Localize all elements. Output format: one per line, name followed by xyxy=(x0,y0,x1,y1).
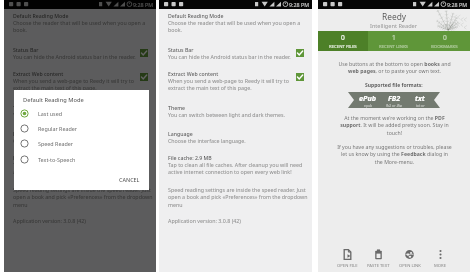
staticText: Intelligent Reader xyxy=(370,22,418,30)
staticText: OPEN FILE xyxy=(337,263,358,269)
staticText: Reedy xyxy=(382,11,407,22)
button[interactable]: 1 xyxy=(368,31,419,51)
staticText: You can switch between light and dark th… xyxy=(13,111,130,118)
staticText: RECENT FILES xyxy=(329,43,357,49)
button[interactable]: File cache: 2.9 MB xyxy=(159,154,312,176)
staticText: At the moment we're working on the PDF s… xyxy=(340,114,449,137)
button[interactable]: PASTE TEXT xyxy=(363,246,394,272)
staticText: txt xyxy=(415,93,425,103)
staticText: 9:28 PM xyxy=(447,1,468,8)
button[interactable]: Toggle setting xyxy=(296,49,304,57)
button[interactable]: CANCEL xyxy=(119,176,149,183)
button[interactable]: Default Reading Mode xyxy=(4,12,156,34)
button[interactable]: OPEN FILE xyxy=(332,246,363,272)
staticText: txt or xyxy=(416,103,425,108)
staticText: 0 xyxy=(341,33,345,42)
button[interactable]: Theme xyxy=(159,104,312,118)
button[interactable]: Regular Reader xyxy=(14,121,149,135)
staticText: Default Reading Mode xyxy=(23,96,84,104)
staticText: Status Bar xyxy=(168,46,194,53)
button[interactable]: Theme xyxy=(4,104,156,118)
staticText: RECENT LINKS xyxy=(379,43,408,49)
staticText: epub xyxy=(364,103,373,108)
staticText: Language xyxy=(13,130,38,137)
staticText: You can switch between light and dark th… xyxy=(168,111,285,118)
button[interactable]: File cache: 2.9 MB xyxy=(4,154,156,176)
staticText: Choose the interface language. xyxy=(13,137,91,144)
staticText: Choose the reader that will be used when… xyxy=(168,19,307,34)
staticText: 9:28 PM xyxy=(289,1,310,8)
button[interactable]: Status Bar xyxy=(159,46,312,60)
staticText: Choose the reader that will be used when… xyxy=(13,19,151,34)
button[interactable]: 0 xyxy=(318,31,368,51)
staticText: Regular Reader xyxy=(38,125,78,132)
staticText: Application version: 3.0.8 (42) xyxy=(13,217,86,224)
staticText: Language xyxy=(168,130,193,137)
button[interactable]: Text-to-Speech xyxy=(14,152,149,166)
staticText: Extract Web content xyxy=(168,70,219,77)
button[interactable]: MORE xyxy=(425,246,456,272)
staticText: Theme xyxy=(13,104,31,111)
staticText: Application version: 3.0.8 (42) xyxy=(168,217,241,224)
button[interactable]: Language xyxy=(4,130,156,144)
staticText: Theme xyxy=(168,104,186,111)
button[interactable]: Toggle setting xyxy=(140,73,148,81)
staticText: MORE xyxy=(434,263,447,269)
staticText: Tap to clean all file caches. After clea… xyxy=(168,161,307,176)
staticText: FB2 xyxy=(388,93,401,103)
staticText: File cache: 2.9 MB xyxy=(13,154,57,161)
staticText: PASTE TEXT xyxy=(367,263,390,269)
staticText: 0 xyxy=(443,33,447,42)
staticText: OPEN LINK xyxy=(399,263,421,269)
staticText: 9:28 PM xyxy=(133,1,154,8)
staticText: Tap to clean all file caches. After clea… xyxy=(13,161,151,176)
button[interactable]: Status Bar xyxy=(4,46,156,60)
staticText: 1 xyxy=(392,33,396,42)
staticText: When you send a web-page to Reedy it wil… xyxy=(168,77,293,92)
staticText: If you have any suggestions or troubles,… xyxy=(337,143,452,166)
staticText: When you send a web-page to Reedy it wil… xyxy=(13,77,137,92)
button[interactable]: Speed Reader xyxy=(14,136,149,150)
staticText: Status Bar xyxy=(13,46,39,53)
button[interactable]: Last used xyxy=(14,106,149,120)
button[interactable]: 0 xyxy=(419,31,470,51)
staticText: Text-to-Speech xyxy=(38,156,76,163)
button[interactable]: Default Reading Mode xyxy=(159,12,312,34)
staticText: You can hide the Android status bar in t… xyxy=(168,53,291,60)
staticText: Speed reading settings are inside the sp… xyxy=(168,186,308,209)
staticText: Default Reading Mode xyxy=(168,12,224,19)
staticText: Extract Web content xyxy=(13,70,64,77)
button[interactable]: OPEN LINK xyxy=(394,246,425,272)
staticText: Speed Reader xyxy=(38,140,74,147)
staticText: Speed reading settings are inside the sp… xyxy=(13,186,153,209)
staticText: Default Reading Mode xyxy=(13,12,69,19)
staticText: ePub xyxy=(359,93,377,103)
button[interactable]: Toggle setting xyxy=(140,49,148,57)
staticText: File cache: 2.9 MB xyxy=(168,154,212,161)
staticText: Last used xyxy=(38,110,63,117)
staticText: fb2 or .fbz xyxy=(386,103,403,108)
staticText: Choose the interface language. xyxy=(168,137,246,144)
button[interactable]: Extract Web content xyxy=(159,70,312,92)
staticText: Supported file formats: xyxy=(365,82,423,89)
staticText: BOOKMARKS xyxy=(431,43,458,49)
staticText: You can hide the Android status bar in t… xyxy=(13,53,136,60)
button[interactable]: Language xyxy=(159,130,312,144)
button[interactable]: Extract Web content xyxy=(4,70,156,92)
button[interactable]: Toggle setting xyxy=(296,73,304,81)
staticText: Use buttons at the bottom to open books … xyxy=(338,60,451,75)
